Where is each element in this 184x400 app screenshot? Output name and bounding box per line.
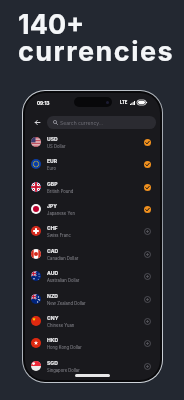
staticText: CAD xyxy=(47,248,59,254)
staticText: Swiss Franc xyxy=(47,233,71,238)
staticText: 140+ xyxy=(18,8,85,41)
staticText: currencies xyxy=(18,35,175,68)
staticText: British Pound xyxy=(47,189,74,194)
staticText: USD xyxy=(47,136,58,142)
button[interactable]: Search currency... xyxy=(47,116,156,129)
staticText: HKD xyxy=(47,337,59,343)
staticText: US Dollar xyxy=(47,144,66,149)
button[interactable]: AUD xyxy=(25,265,160,287)
staticText: Search currency... xyxy=(60,120,104,126)
button[interactable]: EUR xyxy=(25,153,160,175)
button[interactable]: CNY xyxy=(25,310,160,332)
staticText: New Zealand Dollar xyxy=(47,301,86,306)
button[interactable]: CAD xyxy=(25,243,160,265)
button[interactable]: CHF xyxy=(25,220,160,242)
staticText: NZD xyxy=(47,293,58,299)
staticText: LTE xyxy=(120,100,128,105)
staticText: Australian Dollar xyxy=(47,278,80,283)
staticText: GBP xyxy=(47,181,58,187)
button[interactable]: SGD xyxy=(25,355,160,377)
staticText: SGD xyxy=(47,360,58,366)
staticText: CNY xyxy=(47,315,59,321)
staticText: CHF xyxy=(47,225,58,231)
staticText: Chinese Yuan xyxy=(47,323,75,328)
button[interactable]: GBP xyxy=(25,176,160,198)
staticText: JPY xyxy=(47,203,58,209)
button[interactable]: NZD xyxy=(25,288,160,310)
button[interactable]: Back xyxy=(30,115,44,129)
button[interactable]: HKD xyxy=(25,332,160,354)
button[interactable]: JPY xyxy=(25,198,160,220)
staticText: Hong Kong Dollar xyxy=(47,345,82,350)
staticText: Canadian Dollar xyxy=(47,256,79,261)
staticText: AUD xyxy=(47,270,59,276)
staticText: Singapore Dollar xyxy=(47,368,80,373)
staticText: Japanese Yen xyxy=(47,211,75,216)
staticText: EUR xyxy=(47,158,58,164)
button[interactable]: USD xyxy=(25,131,160,153)
staticText: Euro xyxy=(47,166,57,171)
staticText: 09:13 xyxy=(37,101,50,107)
